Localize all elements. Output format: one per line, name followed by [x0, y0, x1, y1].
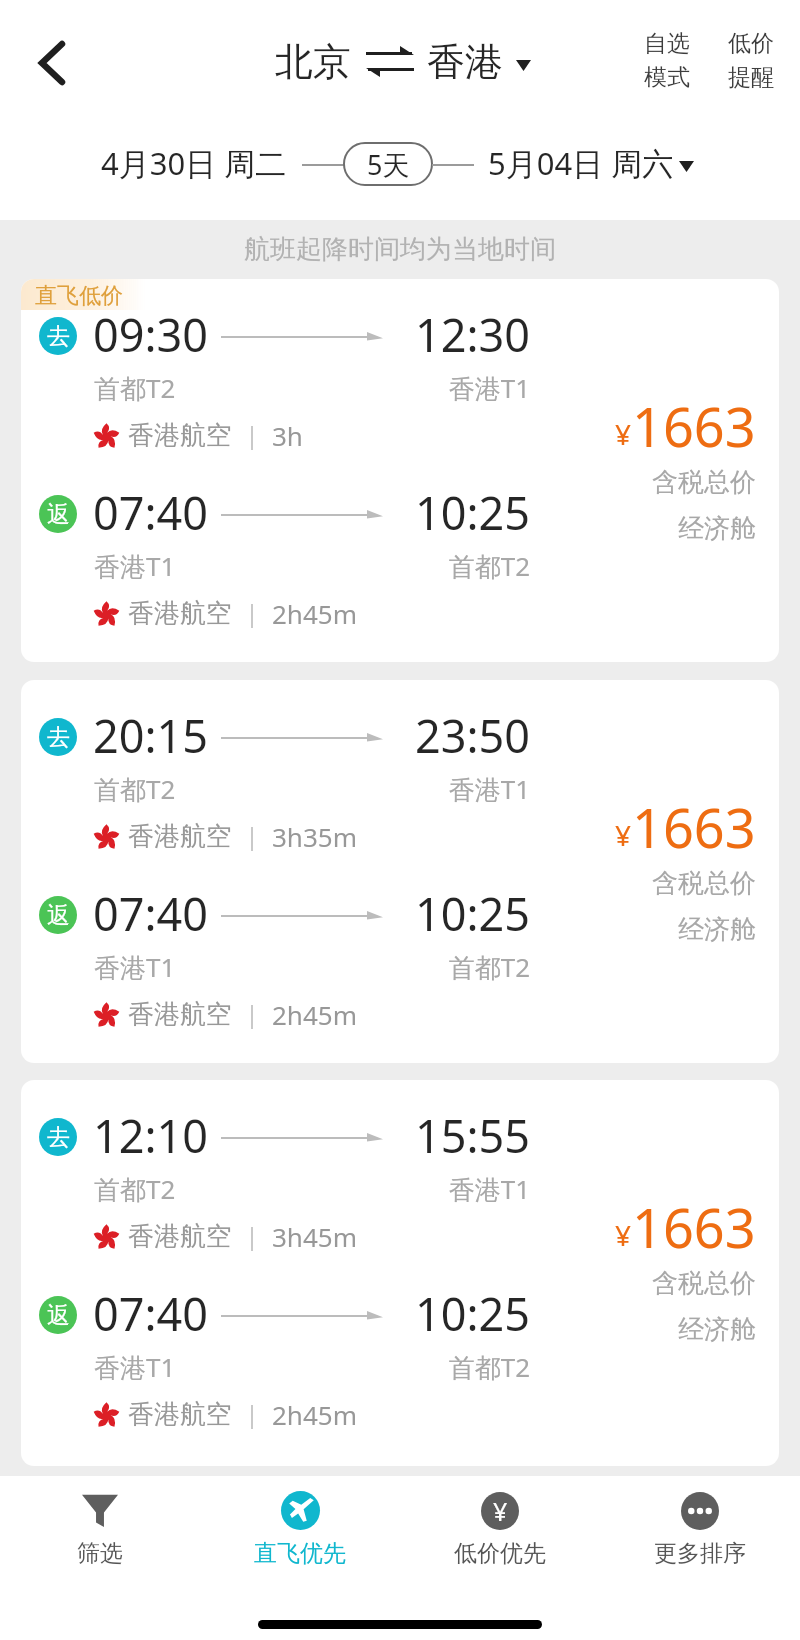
staticText: 含税总价	[450, 867, 756, 900]
staticText: 07:40	[93, 482, 209, 543]
staticText: 首都T2	[300, 949, 530, 985]
staticText: 含税总价	[450, 466, 756, 499]
staticText: ¥	[615, 415, 632, 453]
button[interactable]: Back	[20, 31, 84, 95]
other: Direct flights first	[281, 1491, 320, 1530]
staticText: 香港	[427, 38, 503, 86]
staticText: 4月30日 周二	[101, 142, 287, 184]
staticText: 去	[47, 1123, 70, 1152]
staticText: 首都T2	[300, 548, 530, 584]
other: More sorting	[681, 1492, 719, 1530]
staticText: 直飞优先	[254, 1539, 346, 1568]
staticText: 2h45m	[272, 997, 357, 1032]
button[interactable]: More sorting	[600, 1476, 800, 1574]
staticText: 5天	[367, 146, 410, 183]
staticText: 低价	[728, 29, 774, 58]
staticText: 香港T1	[94, 1349, 176, 1385]
staticText: 去	[47, 723, 70, 752]
staticText: 07:40	[93, 1283, 209, 1344]
staticText: 含税总价	[450, 1267, 756, 1300]
staticText: 更多排序	[654, 1539, 746, 1568]
staticText: ¥	[493, 1494, 508, 1528]
staticText: 模式	[644, 63, 690, 92]
button[interactable]: 低价	[728, 29, 774, 92]
staticText: 1663	[632, 1190, 756, 1264]
staticText: 首都T2	[94, 771, 176, 807]
staticText: 10:25	[300, 883, 530, 944]
staticText: 香港航空	[128, 419, 232, 452]
staticText: 09:30	[93, 304, 209, 365]
staticText: 直飞低价	[35, 282, 123, 310]
staticText: 3h45m	[272, 1219, 357, 1254]
staticText: ¥	[615, 1216, 632, 1254]
staticText: 经济舱	[450, 1313, 756, 1346]
staticText: 香港航空	[128, 1220, 232, 1253]
button[interactable]: 北京	[275, 38, 531, 86]
staticText: 低价优先	[454, 1539, 546, 1568]
staticText: 12:10	[93, 1105, 209, 1166]
staticText: 香港T1	[300, 370, 530, 406]
button[interactable]: Lowest price first	[400, 1476, 600, 1574]
staticText: 5月04日 周六	[488, 142, 674, 184]
staticText: 20:15	[93, 705, 209, 766]
button[interactable]: 去	[21, 680, 779, 1063]
staticText: 香港T1	[300, 771, 530, 807]
staticText: 10:25	[300, 1283, 530, 1344]
button[interactable]: 直飞低价	[21, 279, 779, 662]
staticText: 首都T2	[300, 1349, 530, 1385]
staticText: 23:50	[300, 705, 530, 766]
button[interactable]: 去	[21, 1080, 779, 1466]
staticText: 1663	[632, 790, 756, 864]
button[interactable]: 5月04日 周六	[488, 142, 674, 184]
button[interactable]: Direct flights first	[200, 1476, 400, 1574]
staticText: 首都T2	[94, 370, 176, 406]
staticText: 10:25	[300, 482, 530, 543]
staticText: 经济舱	[450, 512, 756, 545]
staticText: 香港T1	[300, 1171, 530, 1207]
staticText: 15:55	[300, 1105, 530, 1166]
staticText: ¥	[615, 816, 632, 854]
other: Lowest price first	[481, 1492, 519, 1530]
staticText: 香港航空	[128, 1398, 232, 1431]
staticText: 返	[47, 500, 70, 529]
staticText: 航班起降时间均为当地时间	[244, 233, 556, 266]
other: Filter	[82, 1494, 118, 1527]
staticText: 2h45m	[272, 1397, 357, 1432]
button[interactable]: Filter	[0, 1476, 200, 1574]
staticText: 香港航空	[128, 998, 232, 1031]
staticText: 07:40	[93, 883, 209, 944]
staticText: 3h35m	[272, 819, 357, 854]
staticText: 经济舱	[450, 913, 756, 946]
staticText: 去	[47, 322, 70, 351]
staticText: 香港T1	[94, 949, 176, 985]
staticText: 香港T1	[94, 548, 176, 584]
staticText: 北京	[275, 38, 351, 86]
staticText: 提醒	[728, 63, 774, 92]
button[interactable]: 自选	[644, 29, 690, 92]
staticText: 香港航空	[128, 820, 232, 853]
staticText: 返	[47, 1301, 70, 1330]
staticText: 1663	[632, 389, 756, 463]
button[interactable]: 5天	[344, 143, 432, 185]
staticText: 3h	[272, 418, 303, 453]
staticText: 自选	[644, 29, 690, 58]
staticText: 2h45m	[272, 596, 357, 631]
staticText: 12:30	[300, 304, 530, 365]
staticText: 香港航空	[128, 597, 232, 630]
staticText: 首都T2	[94, 1171, 176, 1207]
staticText: 返	[47, 901, 70, 930]
staticText: 筛选	[77, 1539, 123, 1568]
